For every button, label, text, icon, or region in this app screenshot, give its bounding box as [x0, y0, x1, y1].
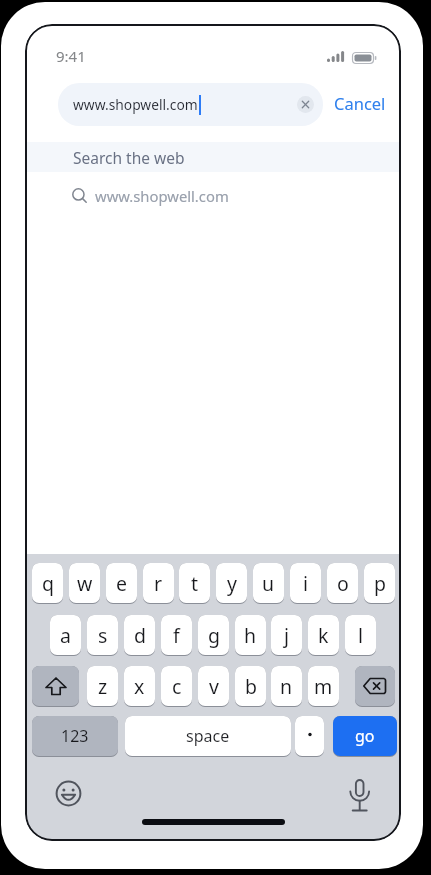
- button[interactable]: [355, 666, 395, 706]
- staticText: 123: [61, 725, 89, 747]
- staticText: p: [374, 570, 386, 597]
- staticText: x: [134, 673, 145, 700]
- button[interactable]: j: [271, 615, 302, 655]
- staticText: s: [98, 622, 108, 649]
- staticText: d: [134, 622, 146, 649]
- button[interactable]: d: [124, 615, 155, 655]
- staticText: v: [209, 673, 219, 700]
- staticText: Search the web: [73, 147, 185, 168]
- button[interactable]: h: [235, 615, 266, 655]
- button[interactable]: 123: [32, 716, 118, 756]
- button[interactable]: u: [253, 563, 284, 603]
- button[interactable]: b: [235, 666, 266, 706]
- button[interactable]: t: [179, 563, 210, 603]
- button[interactable]: q: [32, 563, 63, 603]
- button[interactable]: n: [271, 666, 302, 706]
- button[interactable]: w: [69, 563, 100, 603]
- staticText: o: [337, 570, 349, 597]
- button[interactable]: [297, 96, 314, 113]
- button[interactable]: r: [143, 563, 174, 603]
- staticText: h: [244, 622, 257, 649]
- button[interactable]: c: [161, 666, 192, 706]
- button[interactable]: l: [345, 615, 376, 655]
- button[interactable]: g: [198, 615, 229, 655]
- staticText: t: [191, 570, 199, 597]
- staticText: www.shopwell.com: [73, 95, 198, 114]
- staticText: j: [284, 622, 290, 649]
- button[interactable]: www.shopwell.com: [58, 83, 323, 126]
- staticText: n: [280, 673, 293, 700]
- staticText: www.shopwell.com: [95, 186, 229, 206]
- button[interactable]: z: [87, 666, 118, 706]
- staticText: e: [116, 570, 127, 597]
- button[interactable]: f: [161, 615, 192, 655]
- staticText: l: [358, 622, 364, 649]
- button[interactable]: e: [106, 563, 137, 603]
- button[interactable]: v: [198, 666, 229, 706]
- button[interactable]: i: [290, 563, 321, 603]
- button[interactable]: s: [87, 615, 118, 655]
- staticText: u: [262, 570, 275, 597]
- button[interactable]: space: [125, 716, 291, 756]
- button[interactable]: [32, 666, 79, 706]
- button[interactable]: k: [308, 615, 339, 655]
- button[interactable]: y: [216, 563, 247, 603]
- button[interactable]: [56, 780, 82, 806]
- button[interactable]: x: [124, 666, 155, 706]
- staticText: g: [208, 622, 220, 649]
- staticText: b: [245, 673, 257, 700]
- staticText: y: [227, 570, 237, 597]
- button[interactable]: [347, 777, 373, 813]
- button[interactable]: go: [333, 716, 397, 756]
- staticText: c: [172, 673, 182, 700]
- staticText: i: [303, 570, 309, 597]
- button[interactable]: Cancel: [333, 90, 387, 116]
- button[interactable]: m: [308, 666, 339, 706]
- staticText: z: [98, 673, 108, 700]
- staticText: Cancel: [334, 92, 386, 114]
- staticText: a: [60, 622, 71, 649]
- staticText: m: [314, 673, 333, 700]
- staticText: r: [154, 570, 163, 597]
- button[interactable]: o: [327, 563, 358, 603]
- button[interactable]: a: [50, 615, 81, 655]
- button[interactable]: p: [364, 563, 395, 603]
- staticText: q: [42, 570, 54, 597]
- button[interactable]: [295, 716, 324, 756]
- button[interactable]: www.shopwell.com: [25, 176, 401, 216]
- staticText: w: [77, 570, 93, 597]
- staticText: k: [318, 622, 329, 649]
- staticText: space: [186, 725, 230, 747]
- staticText: 9:41: [56, 46, 86, 66]
- staticText: go: [355, 725, 375, 747]
- staticText: f: [173, 622, 180, 649]
